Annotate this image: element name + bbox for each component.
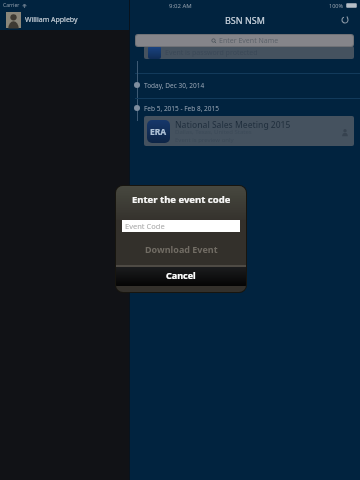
staticText: Cancel — [166, 269, 196, 281]
staticText: Carrier — [3, 2, 20, 9]
staticText: Enter Event Name — [219, 36, 279, 46]
button[interactable]: Download Event — [116, 232, 246, 265]
staticText: 9:02 AM — [169, 2, 192, 10]
staticText: Download Event — [145, 243, 218, 255]
staticText: Today, Dec 30, 2014 — [144, 81, 205, 90]
button[interactable]: Event is password protected — [144, 46, 354, 59]
button[interactable]: Refresh — [338, 13, 352, 27]
button[interactable]: Cancel — [116, 267, 246, 286]
button[interactable]: Enter Event Name — [136, 35, 353, 46]
button[interactable]: William Appleby — [0, 10, 129, 30]
staticText: 100% — [329, 2, 344, 9]
staticText: Feb 5, 2015 - Feb 8, 2015 — [144, 104, 219, 113]
button[interactable]: Download event — [339, 126, 350, 137]
staticText: Enter the event code — [132, 193, 231, 206]
staticText: BSN NSM — [225, 14, 265, 26]
staticText: Event Code — [125, 221, 165, 231]
button[interactable]: Event Code — [122, 220, 240, 232]
staticText: William Appleby — [25, 15, 78, 25]
staticText: National Sales Meeting 2015 — [175, 119, 291, 131]
button[interactable]: ERA — [144, 116, 354, 146]
staticText: ERA — [150, 126, 167, 138]
